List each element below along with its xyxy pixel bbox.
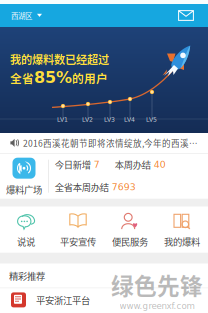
staticText: 我的爆料数已经超过 bbox=[10, 51, 109, 67]
staticText: 85% bbox=[34, 68, 72, 87]
staticText: 本周办结 bbox=[115, 158, 151, 171]
staticText: LV4 bbox=[124, 116, 135, 123]
staticText: LV2 bbox=[82, 116, 93, 123]
staticText: 绿色先锋 bbox=[111, 268, 203, 301]
button[interactable]: 爆料广场 bbox=[0, 154, 48, 199]
staticText: LV1 bbox=[57, 116, 68, 123]
staticText: 的用户 bbox=[72, 69, 108, 86]
button[interactable]: 平安浙江平台 bbox=[0, 288, 208, 311]
staticText: 平安浙江平台 bbox=[36, 293, 90, 307]
button[interactable]: 说说 bbox=[0, 207, 52, 253]
staticText: 今日新增 bbox=[55, 158, 91, 171]
staticText: 7 bbox=[94, 159, 100, 170]
button[interactable]: 便民服务 bbox=[104, 207, 156, 253]
staticText: 爆料广场 bbox=[6, 183, 42, 196]
staticText: LV3 bbox=[104, 116, 115, 123]
button[interactable]: 我的爆料 bbox=[156, 207, 208, 253]
staticText: 精彩推荐 bbox=[9, 269, 45, 282]
button[interactable]: 消息 bbox=[166, 4, 208, 27]
staticText: 40 bbox=[154, 159, 166, 170]
staticText: 西湖区 bbox=[11, 10, 32, 21]
staticText: 平安宣传 bbox=[60, 235, 96, 248]
staticText: 我的爆料 bbox=[164, 235, 200, 248]
staticText: 全省本周办结 bbox=[55, 180, 109, 194]
button[interactable]: 2016西溪花朝节即将浓情绽放,今年的西溪花朝… bbox=[0, 133, 208, 153]
staticText: 说说 bbox=[17, 235, 35, 248]
staticText: 7693 bbox=[112, 181, 136, 192]
staticText: 全省 bbox=[10, 69, 34, 86]
button[interactable]: 平安宣传 bbox=[52, 207, 104, 253]
button[interactable]: 西湖区 bbox=[0, 4, 51, 27]
staticText: LV5 bbox=[146, 116, 157, 123]
staticText: 2016西溪花朝节即将浓情绽放,今年的西溪花朝… bbox=[23, 137, 199, 149]
staticText: 便民服务 bbox=[112, 235, 148, 248]
staticText: www.greenxf.com bbox=[119, 301, 194, 311]
